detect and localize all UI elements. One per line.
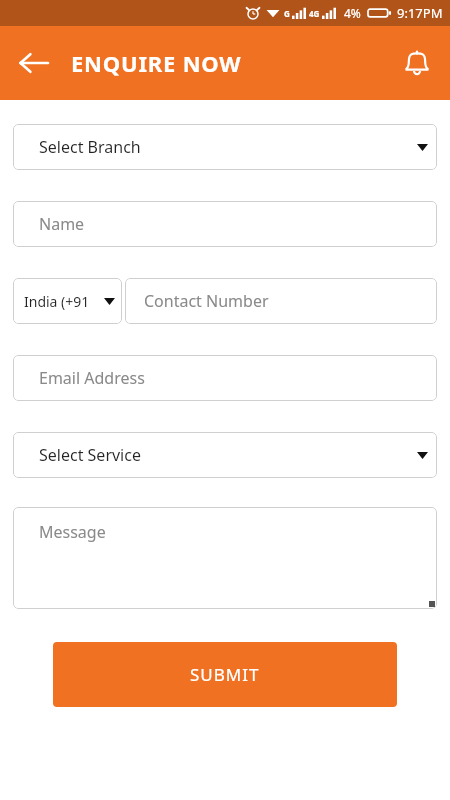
button[interactable]: Select Service [13,432,437,478]
staticText: Name [39,213,85,235]
button[interactable]: SUBMIT [53,642,397,707]
staticText: SUBMIT [190,663,260,686]
staticText: 9:17PM [397,4,443,22]
button[interactable]: Select Branch [13,124,437,170]
staticText: Contact Number [144,290,269,312]
button[interactable]: Notifications [393,39,441,87]
staticText: 4G [309,8,320,19]
staticText: G [284,8,290,19]
staticText: 4% [344,5,361,21]
button[interactable]: Name [13,201,437,247]
button[interactable]: Message [13,507,437,609]
staticText: Message [39,521,106,543]
staticText: Email Address [39,367,145,389]
button[interactable]: Email Address [13,355,437,401]
staticText: India (+91 [24,292,90,311]
button[interactable]: Contact Number [125,278,437,324]
staticText: Select Branch [39,136,141,158]
button[interactable]: Back [11,40,57,86]
staticText: ENQUIRE NOW [71,48,242,78]
staticText: Select Service [39,444,141,466]
button[interactable]: India (+91 [13,278,122,324]
